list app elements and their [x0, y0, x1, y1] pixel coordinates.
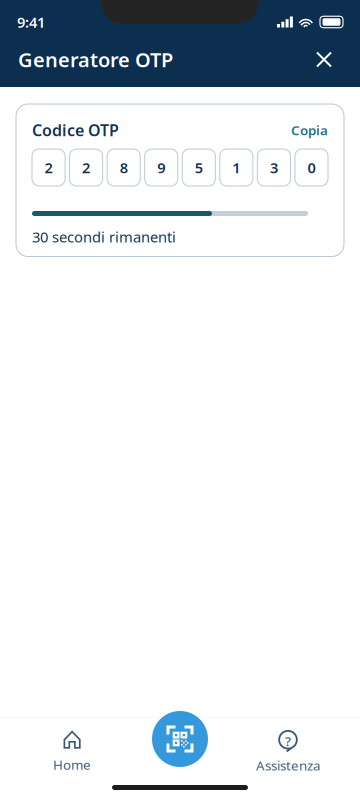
staticText: 0 [307, 158, 315, 177]
staticText: Assistenza [256, 756, 320, 774]
button[interactable]: Scansiona codice QR [152, 711, 208, 767]
staticText: 8 [120, 158, 128, 177]
button[interactable]: Copia [291, 121, 328, 139]
staticText: 2 [44, 158, 52, 177]
staticText: Generatore OTP [18, 46, 173, 73]
button[interactable]: Assistenza [233, 728, 343, 776]
staticText: Copia [291, 121, 328, 139]
staticText: 3 [270, 158, 278, 177]
staticText: 1 [232, 158, 240, 177]
staticText: Codice OTP [32, 119, 119, 141]
staticText: 9 [157, 158, 165, 177]
staticText: 2 [82, 158, 90, 177]
staticText: 9:41 [17, 12, 45, 32]
staticText: Home [53, 756, 91, 773]
staticText: 5 [195, 158, 203, 177]
button[interactable]: Home [24, 728, 120, 776]
button[interactable]: Chiudi [306, 41, 342, 77]
staticText: 30 secondi rimanenti [32, 227, 176, 246]
